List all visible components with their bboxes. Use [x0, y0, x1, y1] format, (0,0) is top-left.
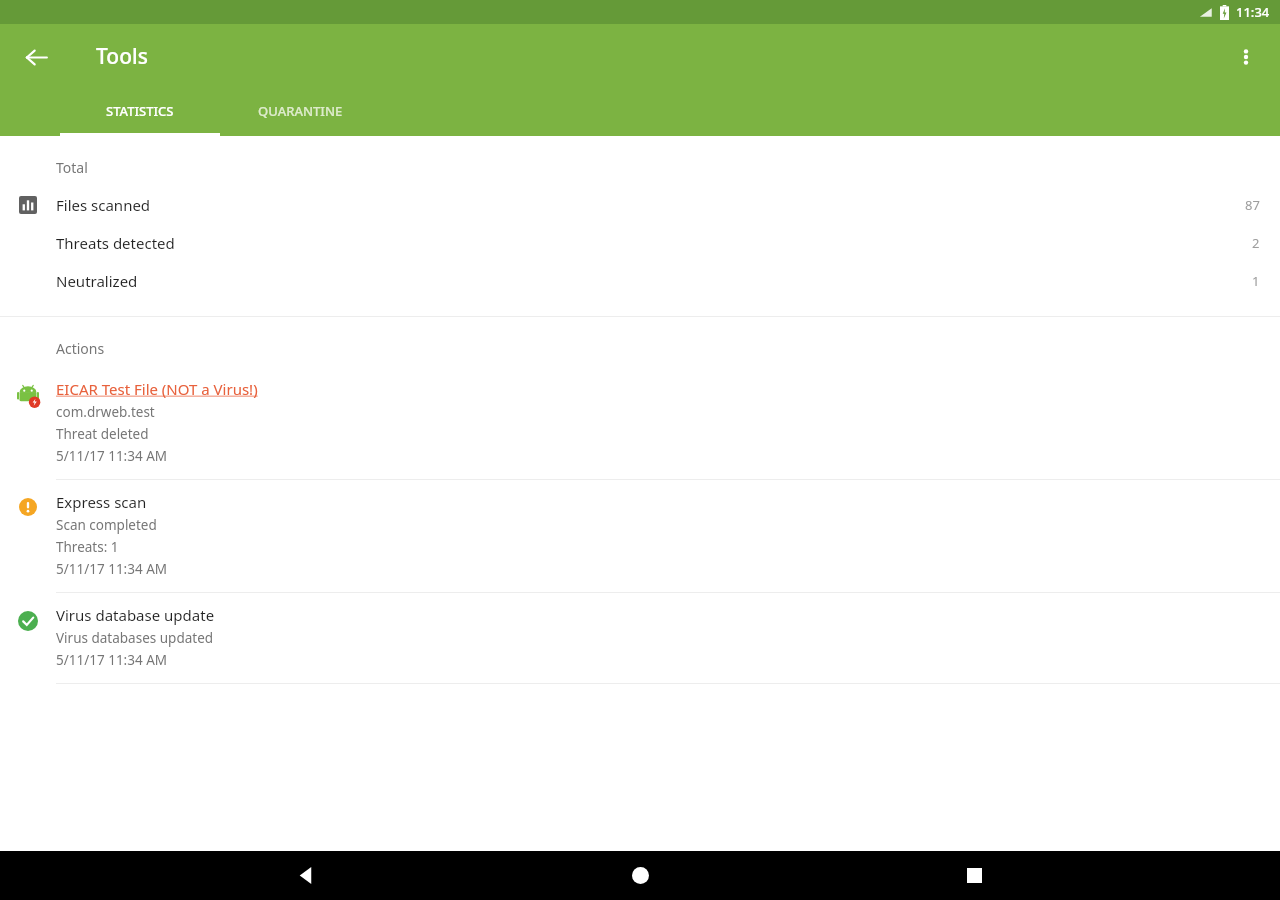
button[interactable]: Neutralized — [0, 262, 1280, 300]
staticText: Threats detected — [56, 233, 175, 253]
button[interactable]: Recent apps — [946, 851, 1002, 900]
button[interactable]: Threats detected — [0, 224, 1280, 262]
button[interactable]: STATISTICS — [60, 89, 220, 136]
staticText: 87 — [1245, 196, 1260, 214]
button[interactable]: Files scanned — [0, 186, 1280, 224]
staticText: Scan completed — [56, 516, 157, 534]
staticText: Threat deleted — [56, 425, 149, 443]
button[interactable]: More options — [1222, 33, 1270, 81]
staticText: EICAR Test File (NOT a Virus!) — [56, 379, 258, 399]
staticText: 5/11/17 11:34 AM — [56, 447, 168, 465]
button[interactable]: EICAR Test File (NOT a Virus!) — [0, 367, 1280, 479]
staticText: com.drweb.test — [56, 403, 155, 421]
staticText: Threats: 1 — [56, 538, 119, 556]
button[interactable]: QUARANTINE — [220, 89, 380, 136]
staticText: Total — [56, 158, 88, 177]
staticText: QUARANTINE — [258, 102, 343, 120]
button[interactable]: Virus database update — [0, 593, 1280, 683]
button[interactable]: Back — [278, 851, 334, 900]
staticText: 5/11/17 11:34 AM — [56, 560, 168, 578]
staticText: Virus databases updated — [56, 629, 214, 647]
staticText: 1 — [1252, 272, 1260, 290]
staticText: STATISTICS — [106, 102, 174, 120]
staticText: Tools — [96, 42, 148, 71]
staticText: 2 — [1252, 234, 1260, 252]
staticText: 5/11/17 11:34 AM — [56, 651, 168, 669]
staticText: Files scanned — [56, 195, 151, 215]
staticText: 11:34 — [1236, 3, 1270, 21]
button[interactable]: Back — [12, 33, 60, 81]
button[interactable]: Express scan — [0, 480, 1280, 592]
staticText: Actions — [56, 339, 105, 358]
staticText: Neutralized — [56, 271, 138, 291]
staticText: Express scan — [56, 492, 147, 512]
staticText: Virus database update — [56, 605, 215, 625]
button[interactable]: Home — [612, 851, 668, 900]
